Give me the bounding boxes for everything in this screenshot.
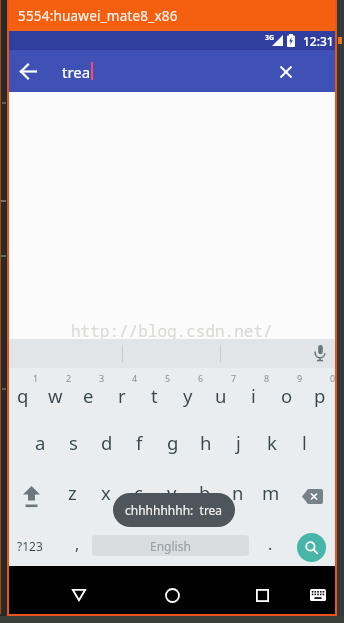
staticText: http://blog.csdn.net/ <box>71 320 273 342</box>
staticText: c <box>134 480 143 505</box>
staticText: r <box>118 383 126 408</box>
staticText: trea <box>62 62 91 82</box>
button[interactable]: q <box>6 374 39 416</box>
staticText: h <box>200 430 212 455</box>
staticText: English <box>150 538 191 554</box>
staticText: 8 <box>264 372 270 384</box>
button[interactable]: h <box>189 421 222 463</box>
button[interactable] <box>297 533 326 562</box>
button[interactable]: x <box>89 471 122 513</box>
staticText: 0 <box>330 372 336 384</box>
button[interactable]: e <box>72 374 105 416</box>
staticText: . <box>268 533 273 555</box>
button[interactable]: ?123 <box>10 525 50 567</box>
staticText: ?123 <box>17 538 43 554</box>
button[interactable]: b <box>188 471 221 513</box>
staticText: 9 <box>297 372 303 384</box>
button[interactable] <box>156 579 188 611</box>
button[interactable]: f <box>123 421 156 463</box>
staticText: n <box>232 480 244 505</box>
button[interactable]: z <box>56 471 89 513</box>
staticText: 5 <box>165 372 171 384</box>
button[interactable]: k <box>255 421 288 463</box>
staticText: x <box>101 480 111 505</box>
staticText: i <box>251 383 256 408</box>
staticText: p <box>314 383 326 408</box>
staticText: d <box>101 430 113 455</box>
button[interactable]: t <box>138 374 171 416</box>
staticText: e <box>83 383 94 408</box>
button[interactable]: m <box>254 471 287 513</box>
button[interactable] <box>270 56 301 87</box>
button[interactable]: g <box>156 421 189 463</box>
staticText: 7 <box>231 372 237 384</box>
button[interactable]: r <box>105 374 138 416</box>
button[interactable]: u <box>204 374 237 416</box>
button[interactable]: j <box>222 421 255 463</box>
staticText: f <box>136 430 143 455</box>
button[interactable]: s <box>57 421 90 463</box>
button[interactable] <box>246 579 278 611</box>
staticText: w <box>48 383 63 408</box>
button[interactable]: i <box>237 374 270 416</box>
staticText: , <box>75 533 80 555</box>
staticText: l <box>302 430 307 455</box>
staticText: 6 <box>198 372 204 384</box>
staticText: m <box>262 480 280 505</box>
button[interactable] <box>306 340 334 368</box>
staticText: y <box>183 383 193 408</box>
button[interactable] <box>63 579 95 611</box>
staticText: 1 <box>33 372 39 384</box>
staticText: s <box>69 430 78 455</box>
button[interactable]: English <box>92 535 249 556</box>
staticText: 3 <box>99 372 105 384</box>
staticText: k <box>267 430 277 455</box>
staticText: o <box>281 383 293 408</box>
button[interactable]: , <box>61 523 94 565</box>
button[interactable]: c <box>122 471 155 513</box>
button[interactable] <box>12 55 44 87</box>
button[interactable] <box>11 475 51 517</box>
button[interactable]: v <box>155 471 188 513</box>
staticText: 2 <box>66 372 72 384</box>
button[interactable]: n <box>221 471 254 513</box>
staticText: 5554:huawei_mate8_x86 <box>18 7 178 25</box>
staticText: u <box>215 383 227 408</box>
staticText: z <box>68 480 77 505</box>
button[interactable] <box>292 475 332 517</box>
button[interactable]: . <box>254 523 287 565</box>
staticText: 3G <box>265 33 275 43</box>
staticText: j <box>236 430 241 455</box>
button[interactable] <box>304 581 332 609</box>
button[interactable]: a <box>24 421 57 463</box>
button[interactable]: d <box>90 421 123 463</box>
staticText: v <box>167 480 177 505</box>
staticText: g <box>167 430 179 455</box>
button[interactable]: p <box>303 374 336 416</box>
staticText: t <box>151 383 158 408</box>
staticText: 4 <box>132 372 138 384</box>
staticText: chhhhhhhh: trea <box>125 502 223 518</box>
staticText: 12:31 <box>303 33 334 49</box>
staticText: q <box>17 383 29 408</box>
staticText: a <box>35 430 46 455</box>
staticText: b <box>199 480 211 505</box>
button[interactable]: y <box>171 374 204 416</box>
button[interactable]: w <box>39 374 72 416</box>
button[interactable]: l <box>288 421 321 463</box>
button[interactable]: o <box>270 374 303 416</box>
